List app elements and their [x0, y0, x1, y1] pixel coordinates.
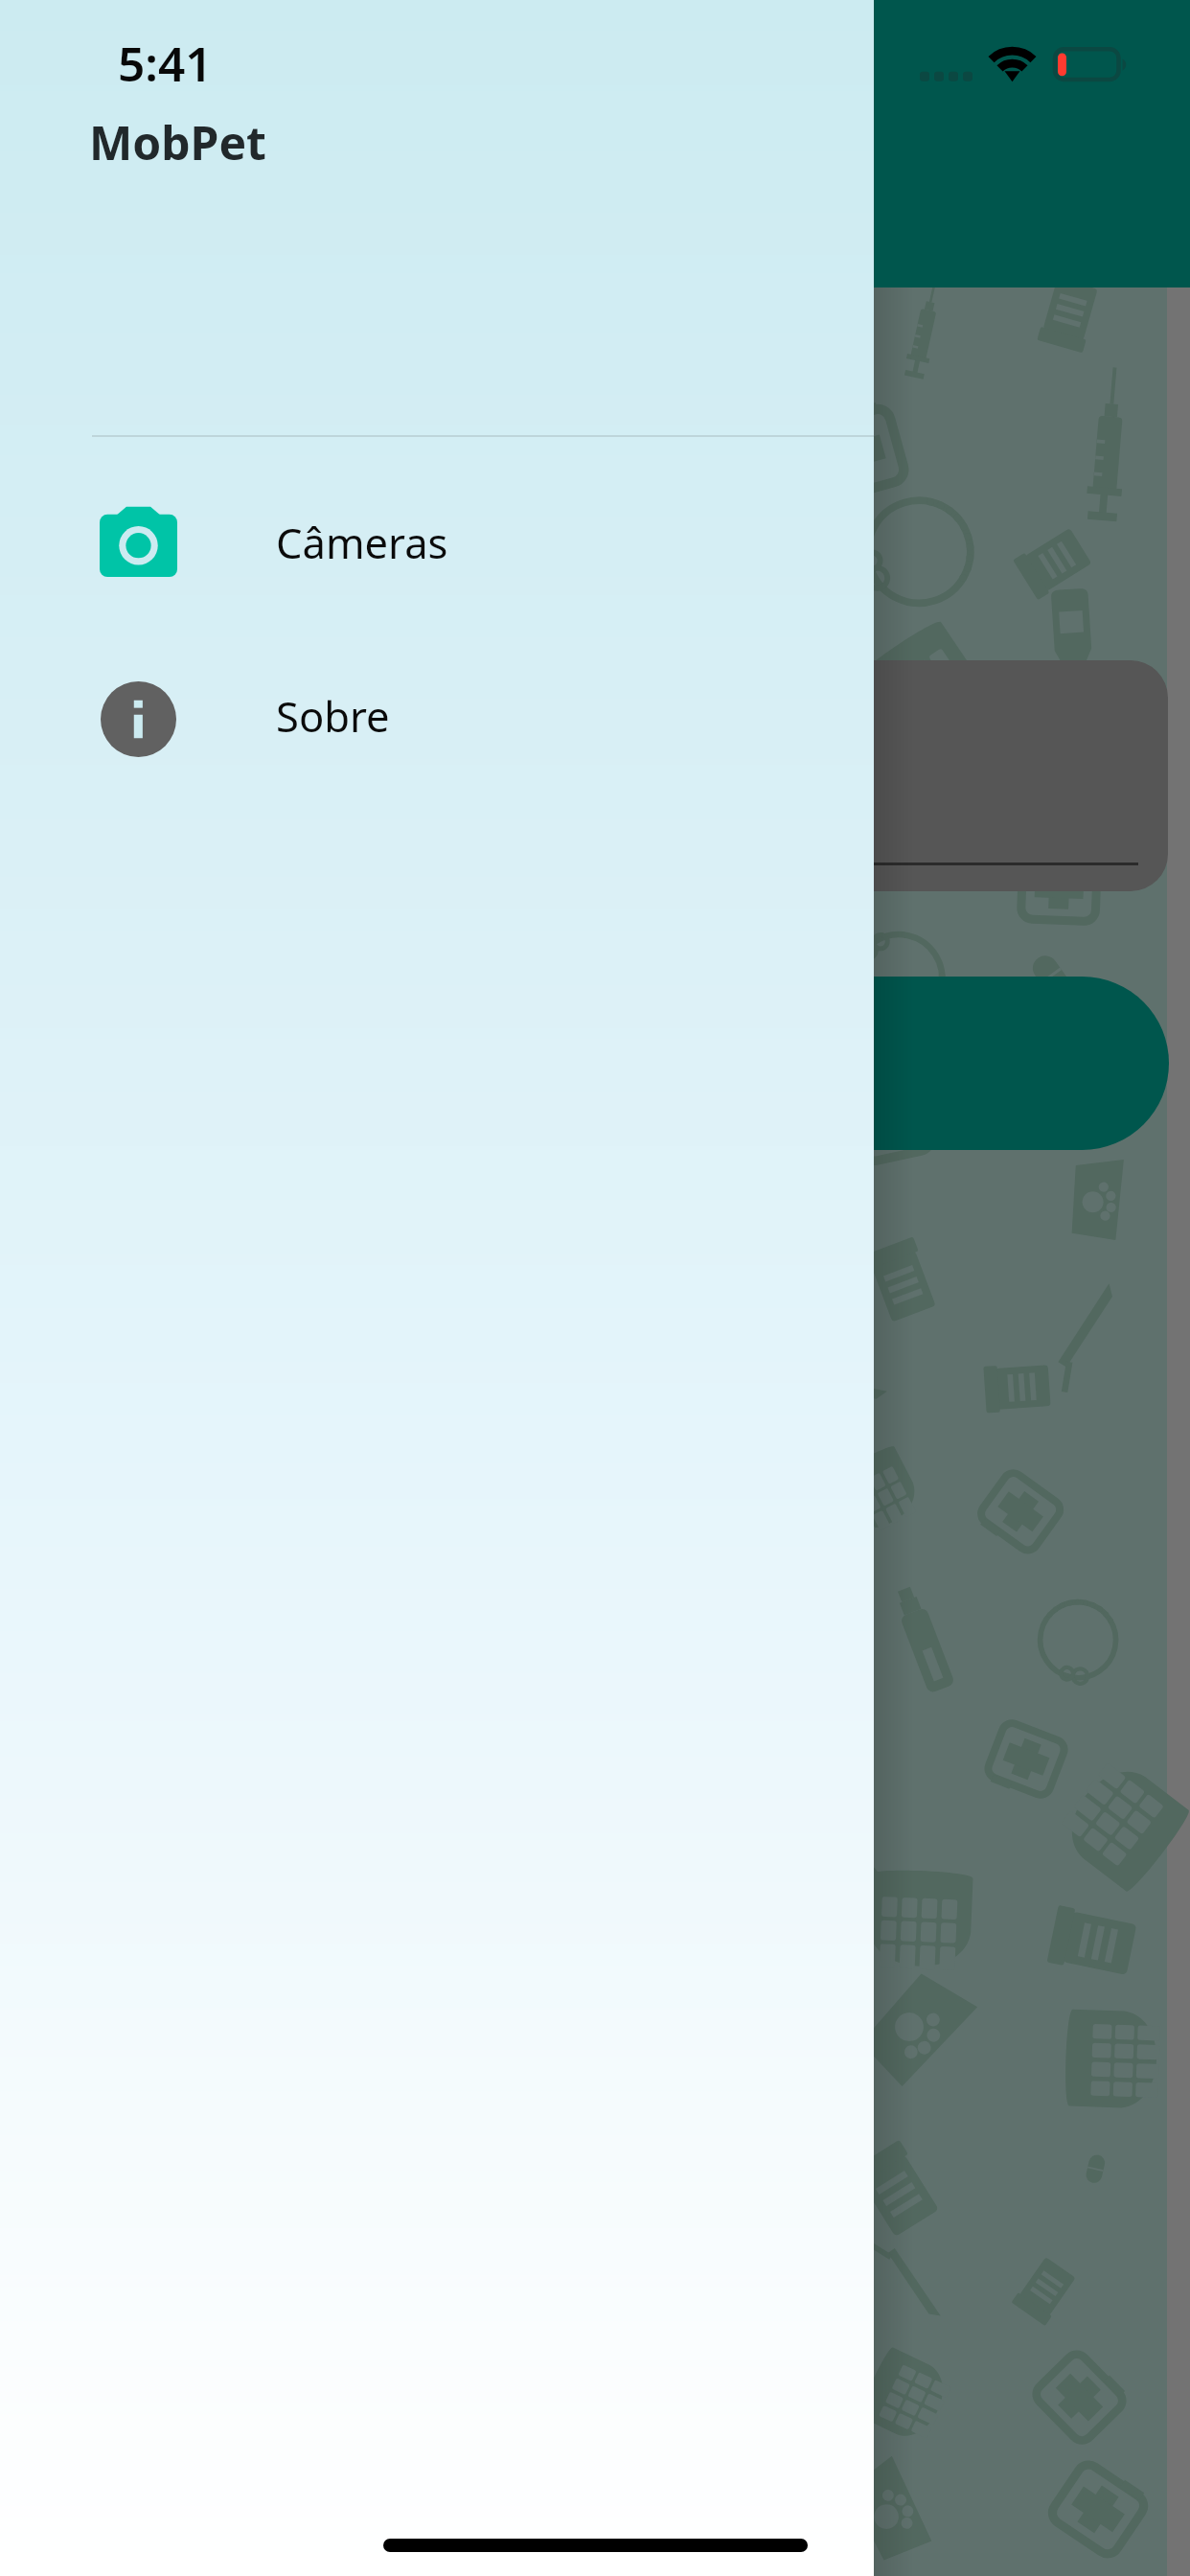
staticText: 5:41	[118, 31, 213, 95]
button[interactable]: Câmeras	[0, 495, 874, 587]
staticText: MobPet	[89, 111, 266, 173]
staticText: Câmeras	[276, 514, 448, 570]
other: Sobre	[101, 681, 176, 757]
other: Câmeras	[100, 499, 177, 577]
staticText: Sobre	[276, 687, 390, 744]
button[interactable]: Sobre	[0, 669, 874, 761]
